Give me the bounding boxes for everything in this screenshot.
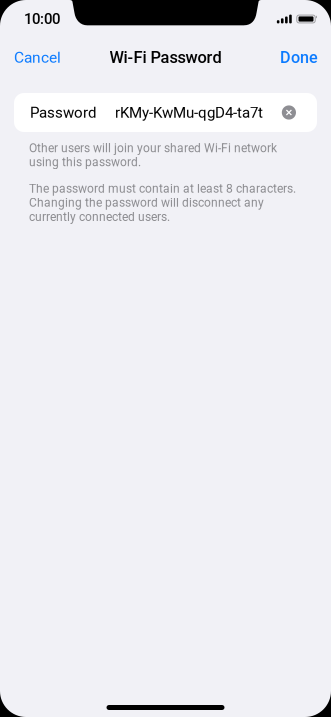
button[interactable]: Cancel [0, 39, 75, 75]
button[interactable]: Done [267, 39, 331, 76]
staticText: rKMy-KwMu-qgD4-ta7t [115, 104, 263, 121]
staticText: Password [30, 104, 96, 121]
staticText: Other users will join your shared Wi-Fi … [29, 141, 277, 169]
staticText: The password must contain at least 8 cha… [29, 182, 296, 224]
staticText: Wi-Fi Password [109, 48, 221, 67]
staticText: 10:00 [24, 10, 60, 28]
staticText: Done [280, 48, 318, 67]
staticText: Cancel [14, 48, 61, 66]
button[interactable]: Clear text [282, 105, 317, 120]
